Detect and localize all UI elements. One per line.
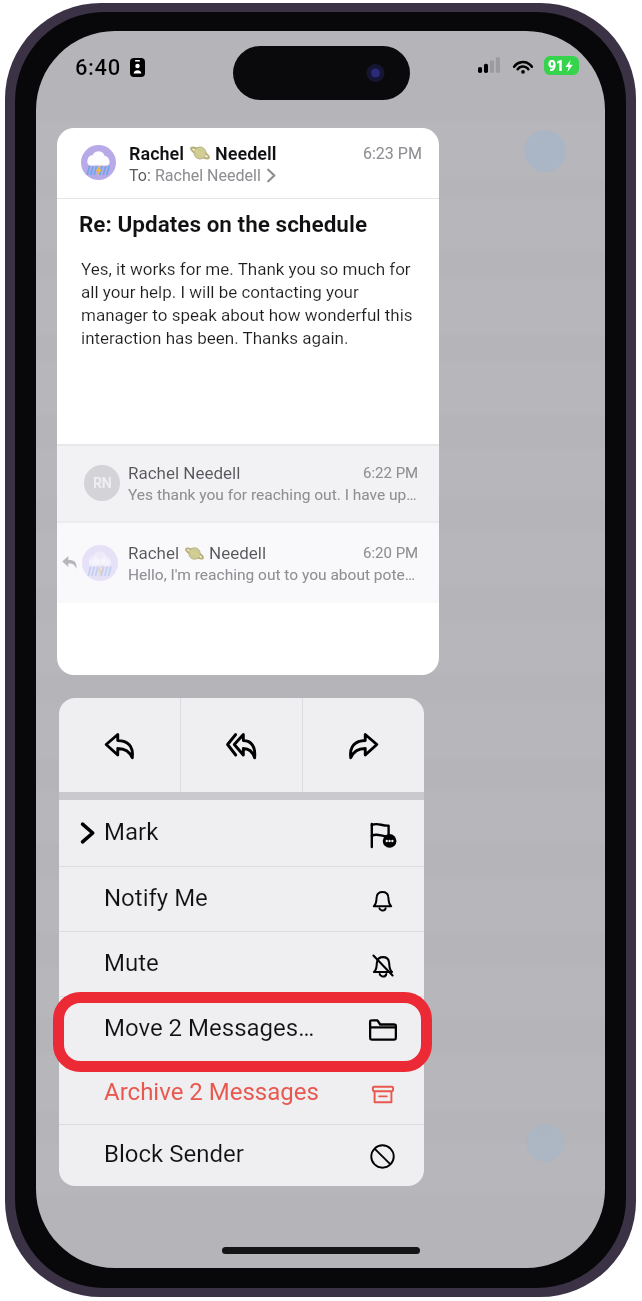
- button[interactable]: Reply all: [181, 698, 302, 792]
- staticText: Rachel: [129, 143, 185, 164]
- staticText: Notify Me: [104, 884, 208, 912]
- staticText: Re: Updates on the schedule: [79, 211, 368, 237]
- staticText: 6:22 PM: [363, 464, 419, 482]
- staticText: Rachel: [128, 543, 180, 563]
- staticText: Hello, I'm reaching out to you about pot…: [128, 566, 416, 584]
- button[interactable]: Reply: [59, 698, 180, 792]
- staticText: Block Sender: [104, 1140, 244, 1168]
- button[interactable]: RN: [57, 446, 439, 521]
- staticText: 6:23 PM: [363, 144, 422, 163]
- staticText: Yes thank you for reaching out. I have u…: [128, 486, 417, 504]
- staticText: Mute: [104, 949, 159, 977]
- button[interactable]: Move 2 Messages…: [59, 996, 424, 1061]
- button[interactable]: Notify Me: [59, 866, 424, 931]
- button[interactable]: Mark: [59, 800, 424, 866]
- button[interactable]: Block Sender: [59, 1124, 424, 1186]
- staticText: Yes, it works for me. Thank you so much …: [81, 259, 417, 349]
- staticText: Needell: [209, 543, 267, 563]
- staticText: Rachel Needell: [128, 463, 241, 483]
- staticText: 6:40: [75, 55, 121, 79]
- staticText: 6:20 PM: [363, 544, 419, 562]
- button[interactable]: Archive 2 Messages: [59, 1061, 424, 1124]
- staticText: To:: [129, 166, 155, 185]
- button[interactable]: Mute: [59, 931, 424, 996]
- button[interactable]: Rachel: [57, 523, 439, 603]
- staticText: RN: [93, 475, 112, 491]
- staticText: Needell: [215, 143, 277, 164]
- staticText: Mark: [104, 818, 159, 846]
- staticText: Move 2 Messages…: [104, 1014, 315, 1042]
- button[interactable]: Forward: [303, 698, 424, 792]
- staticText: 91: [548, 58, 565, 74]
- staticText: Archive 2 Messages: [104, 1078, 319, 1106]
- staticText: Rachel Needell: [155, 166, 261, 185]
